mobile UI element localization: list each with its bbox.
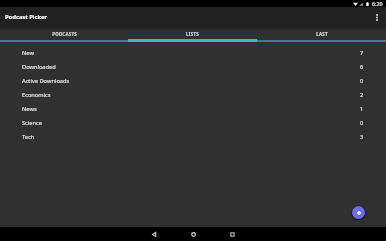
- staticText: 6: [360, 63, 364, 71]
- button[interactable]: Home: [183, 227, 203, 241]
- button[interactable]: Back: [144, 227, 164, 241]
- staticText: Economics: [22, 91, 51, 99]
- button[interactable]: Economics: [0, 88, 386, 102]
- button[interactable]: Active Downloads: [0, 74, 386, 88]
- staticText: New: [22, 49, 34, 57]
- staticText: Tech: [22, 133, 35, 141]
- staticText: 6:20: [372, 0, 383, 7]
- button[interactable]: Add: [350, 204, 367, 221]
- button[interactable]: More options: [368, 7, 386, 27]
- staticText: 3: [360, 133, 364, 141]
- button[interactable]: Tech: [0, 130, 386, 144]
- staticText: 0: [360, 119, 364, 127]
- button[interactable]: LISTS: [128, 27, 257, 41]
- button[interactable]: LAST: [257, 27, 386, 41]
- button[interactable]: News: [0, 102, 386, 116]
- staticText: 1: [360, 105, 364, 113]
- button[interactable]: Recents: [222, 227, 242, 241]
- staticText: Active Downloads: [22, 77, 70, 85]
- staticText: 0: [360, 77, 364, 85]
- staticText: Science: [22, 119, 42, 127]
- staticText: 2: [360, 91, 364, 99]
- staticText: LISTS: [186, 31, 199, 37]
- staticText: Downloaded: [22, 63, 56, 71]
- staticText: PODCASTS: [52, 31, 77, 37]
- button[interactable]: Downloaded: [0, 60, 386, 74]
- button[interactable]: PODCASTS: [0, 27, 128, 41]
- staticText: News: [22, 105, 37, 113]
- staticText: Podcast Picker: [5, 13, 47, 21]
- button[interactable]: Science: [0, 116, 386, 130]
- button[interactable]: New: [0, 46, 386, 60]
- staticText: 7: [360, 49, 364, 57]
- staticText: LAST: [316, 31, 328, 37]
